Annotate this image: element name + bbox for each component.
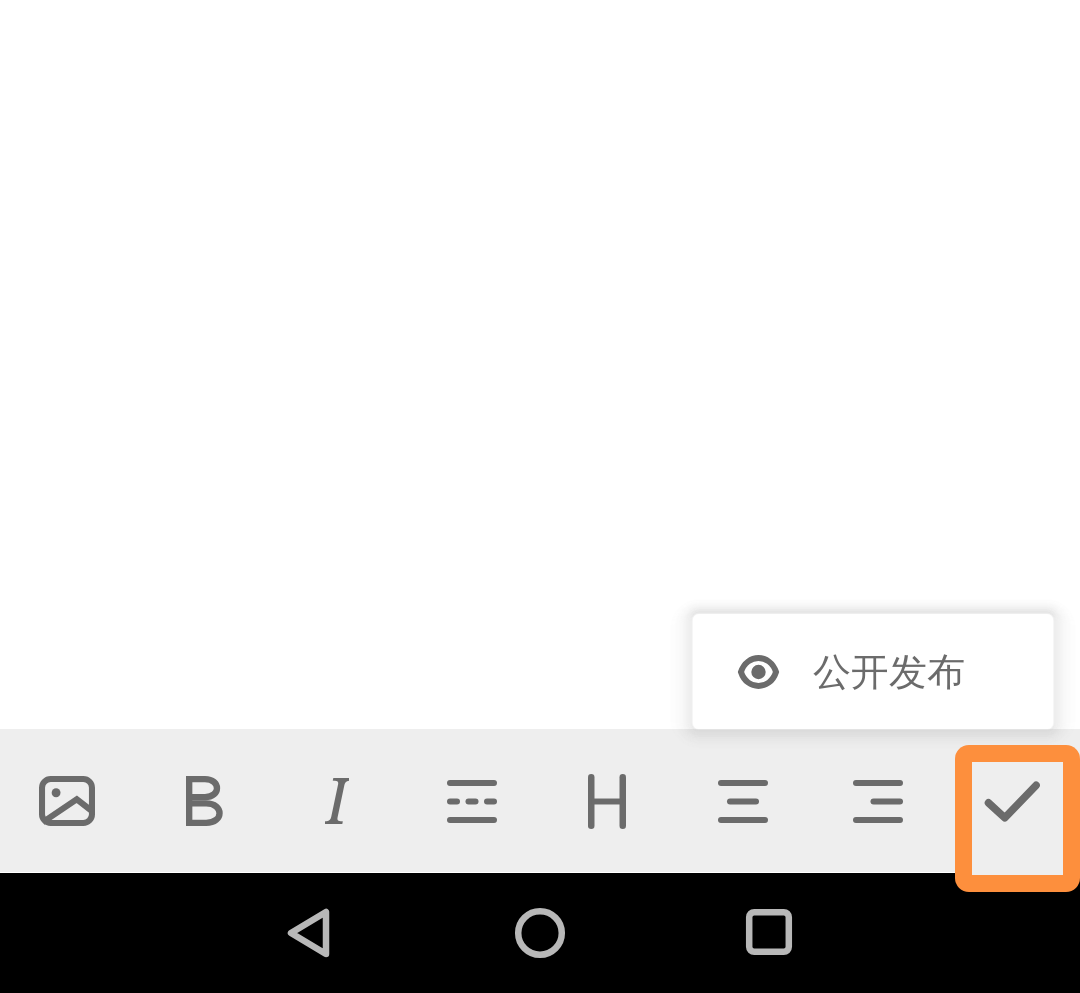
button[interactable]: Home <box>490 883 590 983</box>
button[interactable]: Recents <box>719 882 819 982</box>
button[interactable]: Heading <box>566 752 648 851</box>
staticText: I <box>325 756 349 840</box>
button[interactable]: Back <box>258 883 358 983</box>
button[interactable]: Done <box>972 762 1063 875</box>
button[interactable]: Italic <box>303 759 371 843</box>
button[interactable]: Insert image <box>17 754 117 848</box>
button[interactable]: 公开发布 <box>693 614 1053 729</box>
button[interactable]: Align right <box>831 758 925 845</box>
staticText: 公开发布 <box>813 648 965 696</box>
button[interactable]: Align center <box>696 758 790 845</box>
button[interactable]: Bold <box>164 754 246 848</box>
button[interactable]: Quote <box>425 758 519 845</box>
